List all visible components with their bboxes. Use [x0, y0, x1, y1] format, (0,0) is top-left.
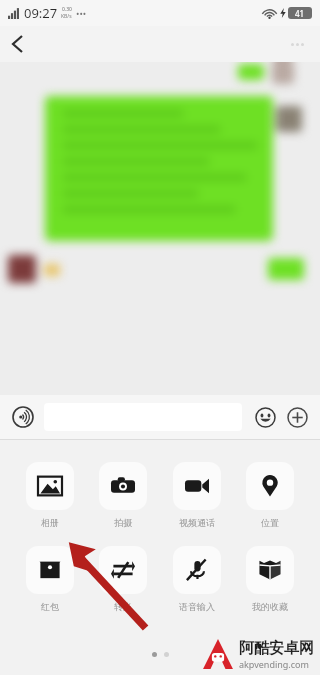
- button[interactable]: 拍摄: [89, 462, 157, 528]
- button[interactable]: Voice input: [8, 402, 38, 432]
- staticText: 相册: [41, 517, 59, 528]
- staticText: 0.30: [62, 6, 72, 13]
- button[interactable]: 视频通话: [163, 462, 231, 528]
- staticText: KB/s: [61, 13, 72, 20]
- button[interactable]: 我的收藏: [236, 546, 304, 612]
- button[interactable]: 相册: [16, 462, 84, 528]
- staticText: 位置: [261, 517, 279, 528]
- button[interactable]: 红包: [16, 546, 84, 612]
- button[interactable]: More functions: [282, 402, 312, 432]
- staticText: 语音输入: [179, 601, 215, 612]
- button[interactable]: 语音输入: [163, 546, 231, 612]
- staticText: 我的收藏: [252, 601, 288, 612]
- staticText: 阿酷安卓网: [239, 639, 314, 658]
- button[interactable]: Emoji: [250, 402, 280, 432]
- staticText: akpvending.com: [239, 658, 309, 670]
- button[interactable]: 转账: [89, 546, 157, 612]
- staticText: 41: [295, 8, 305, 19]
- staticText: 红包: [41, 601, 59, 612]
- staticText: 09:27: [24, 4, 58, 22]
- button[interactable]: More options: [282, 29, 312, 59]
- staticText: 拍摄: [114, 517, 132, 528]
- staticText: 转账: [114, 601, 132, 612]
- button[interactable]: Back: [0, 27, 34, 61]
- button[interactable]: 位置: [236, 462, 304, 528]
- staticText: •••: [76, 7, 87, 19]
- staticText: 视频通话: [179, 517, 215, 528]
